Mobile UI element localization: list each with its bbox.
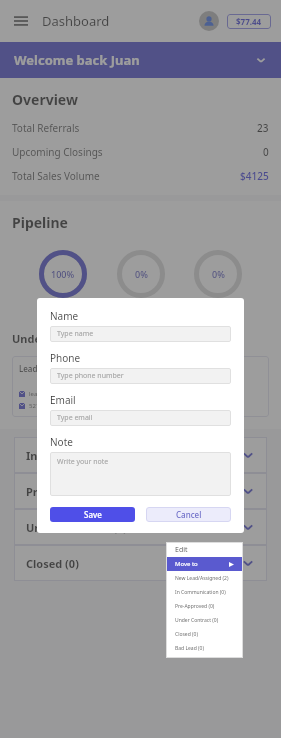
button[interactable]: Lead Name (144, 356, 269, 417)
button[interactable]: Bad Lead (0) (166, 641, 243, 655)
staticText: Type name (57, 329, 94, 339)
staticText: 23 (257, 121, 269, 135)
staticText: Closed (0) (26, 556, 79, 571)
button[interactable]: Profile (199, 11, 219, 31)
staticText: Phone (50, 351, 81, 365)
button[interactable]: Upcoming Closings (12, 145, 269, 159)
staticText: Name (50, 309, 79, 323)
button[interactable]: Lead Name (12, 356, 136, 417)
staticText: Closed (0) (175, 631, 198, 638)
button[interactable]: Edit (166, 542, 243, 557)
button[interactable]: Type name (50, 326, 231, 342)
staticText: lead@mail.com (29, 390, 73, 398)
button[interactable]: $77.44 (227, 14, 271, 29)
staticText: $77.44 (236, 16, 262, 27)
button[interactable]: Type phone number (50, 368, 231, 384)
staticText: 521-232-1234 (29, 402, 68, 410)
staticText: New Lead/Assigned (2) (175, 575, 229, 582)
button[interactable]: Closed (0) (166, 627, 243, 641)
button[interactable]: 0% (192, 248, 244, 300)
staticText: Welcome back Juan (14, 51, 140, 69)
staticText: Email (50, 393, 76, 407)
button[interactable]: In Communication (0) (166, 585, 243, 599)
staticText: Edit (175, 545, 188, 555)
staticText: Overview (12, 90, 78, 109)
staticText: 0% (212, 268, 225, 280)
staticText: Under Contract (0) (26, 520, 127, 535)
staticText: Cancel (176, 509, 202, 520)
button[interactable]: Move to (166, 557, 243, 571)
button[interactable]: In Communication (0) (14, 437, 267, 473)
button[interactable]: 100% (37, 248, 89, 300)
staticText: Save (84, 509, 102, 520)
staticText: Type phone number (57, 371, 124, 381)
button[interactable]: Total Referrals (12, 121, 269, 135)
staticText: 0% (135, 268, 148, 280)
staticText: Type email (57, 413, 93, 423)
staticText: Lead Name (151, 363, 195, 374)
staticText: Bad Lead (0) (175, 645, 204, 652)
button[interactable]: Pre-Approved (0) (14, 473, 267, 509)
staticText: Move to (175, 560, 198, 568)
staticText: Pre-Approved (0) (175, 603, 215, 610)
button[interactable]: Save (50, 507, 135, 522)
staticText: Lead Name (19, 363, 63, 374)
button[interactable]: Pre-Approved (0) (166, 599, 243, 613)
staticText: Dashboard (42, 12, 110, 30)
staticText: In Communication (0) (175, 589, 226, 596)
staticText: 0 (263, 145, 269, 159)
staticText: Upcoming Closings (12, 145, 103, 159)
staticText: Under Contract (0) (175, 617, 219, 624)
button[interactable]: Name (37, 298, 244, 533)
button[interactable]: Open navigation menu (10, 10, 32, 32)
staticText: Total Sales Volume (12, 169, 100, 183)
staticText: 100% (51, 268, 75, 280)
staticText: New Lead (45, 306, 82, 317)
staticText: Write your note (57, 457, 109, 467)
staticText: Pre-Approved (0) (26, 484, 117, 499)
button[interactable]: 0% (115, 248, 167, 300)
button[interactable]: Total Sales Volume (12, 169, 269, 183)
button[interactable]: Under Contract (0) (166, 613, 243, 627)
button[interactable]: Welcome back Juan (0, 42, 281, 78)
button[interactable]: Write your note (50, 452, 231, 496)
button[interactable]: Type email (50, 410, 231, 426)
staticText: Pipeline (12, 213, 68, 232)
button[interactable]: New Lead/Assigned (2) (166, 571, 243, 585)
button[interactable]: Closed (0) (14, 545, 267, 581)
button[interactable]: Under Contract (0) (14, 509, 267, 545)
staticText: $4125 (240, 169, 269, 183)
staticText: Under Contract (0) (12, 331, 113, 346)
staticText: In Communication (0) (26, 448, 145, 463)
button[interactable]: Cancel (146, 507, 231, 522)
staticText: Total Referrals (12, 121, 80, 135)
staticText: Note (50, 435, 73, 449)
